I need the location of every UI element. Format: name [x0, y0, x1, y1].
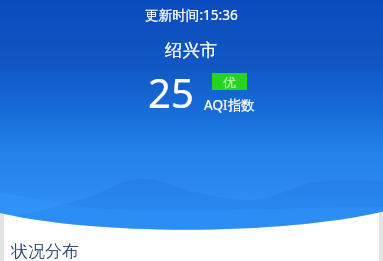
staticText: 优: [223, 74, 236, 90]
button[interactable]: 状况分布: [4, 236, 379, 261]
button[interactable]: 绍兴市: [155, 34, 228, 66]
staticText: 状况分布: [11, 241, 79, 261]
staticText: 更新时间:15:36: [145, 5, 238, 24]
staticText: AQI指数: [204, 95, 255, 114]
staticText: 25: [148, 65, 194, 119]
button[interactable]: 优: [212, 73, 247, 90]
staticText: 绍兴市: [165, 39, 218, 61]
